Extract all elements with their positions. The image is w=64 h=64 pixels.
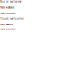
staticText: You're welcome	[0, 0, 22, 4]
staticText: You're welcome	[0, 16, 24, 20]
staticText: You're welcome	[0, 28, 15, 30]
staticText: You're welcome	[0, 11, 15, 14]
staticText: You're welcome	[0, 22, 13, 26]
staticText: You're welcome	[0, 6, 14, 9]
